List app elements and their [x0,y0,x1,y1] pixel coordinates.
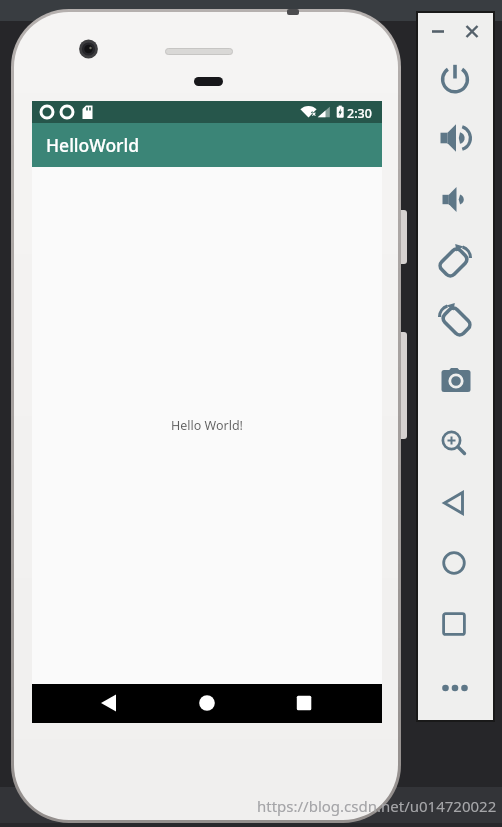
button[interactable] [440,64,470,94]
staticText: https://blog.csdn.net/u014720022 [257,796,497,816]
button[interactable] [439,428,469,458]
staticText: 2:30 [347,105,372,122]
button[interactable] [192,688,222,718]
button[interactable] [437,303,473,339]
button[interactable] [439,681,471,713]
button[interactable] [440,366,472,398]
button[interactable] [437,244,473,280]
button[interactable] [441,550,467,576]
button[interactable] [440,123,470,153]
button[interactable] [460,20,484,44]
button[interactable] [441,490,469,518]
button[interactable] [289,688,319,718]
button[interactable] [426,20,450,44]
button[interactable] [442,186,470,214]
staticText: Hello World! [171,417,243,434]
staticText: HelloWorld [46,133,140,157]
button[interactable] [441,611,467,637]
button[interactable] [94,688,124,718]
